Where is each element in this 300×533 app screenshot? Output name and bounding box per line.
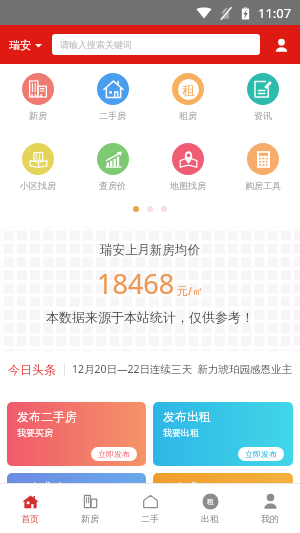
button[interactable]: 二手 — [120, 493, 180, 524]
staticText: 18468 — [97, 265, 175, 302]
button[interactable]: 小区找房 — [0, 143, 75, 191]
staticText: 立即发布 — [245, 516, 277, 526]
button[interactable]: 今日头条 — [8, 351, 292, 387]
button[interactable]: 立即发布 — [91, 447, 137, 461]
staticText: 新房 — [81, 513, 99, 524]
staticText: 出租 — [201, 513, 219, 524]
button[interactable]: 二手房 — [75, 73, 150, 121]
staticText: 瑞安 — [9, 38, 31, 52]
staticText: 二手房 — [99, 110, 126, 121]
button[interactable]: 查房价 — [75, 143, 150, 191]
button[interactable]: 发布二手房 — [7, 402, 146, 466]
staticText: 购房工具 — [245, 180, 281, 191]
staticText: 租房 — [179, 110, 197, 121]
button[interactable]: 发布出租 — [153, 402, 293, 466]
button[interactable]: 购房工具 — [225, 143, 300, 191]
staticText: 11:07 — [258, 4, 292, 22]
button[interactable]: 立即发布 — [238, 447, 284, 461]
staticText: 我的 — [261, 513, 279, 524]
staticText: 查房价 — [99, 180, 126, 191]
staticText: 发布求租 — [163, 480, 211, 495]
button[interactable]: 新房 — [60, 493, 120, 524]
staticText: 请输入搜索关键词 — [60, 39, 132, 50]
staticText: 立即发布 — [245, 449, 277, 459]
staticText: 首页 — [21, 513, 39, 524]
staticText: 新房 — [29, 110, 47, 121]
button[interactable]: 发布求租 — [153, 473, 293, 533]
staticText: 二手 — [141, 513, 159, 524]
staticText: 发布求购 — [17, 480, 65, 495]
staticText: 地图找房 — [170, 180, 206, 191]
staticText: 发布二手房 — [17, 409, 77, 424]
staticText: 瑞安上月新房均价 — [100, 242, 200, 258]
staticText: 租 — [207, 497, 214, 506]
button[interactable]: 立即发布 — [238, 514, 284, 528]
button[interactable]: 我的 — [240, 493, 300, 524]
staticText: 12月20日—22日连续三天 新力琥珀园感恩业主信 — [72, 362, 292, 376]
button[interactable]: 个人中心 — [269, 33, 293, 57]
staticText: 立即发布 — [98, 516, 130, 526]
button[interactable]: 租 — [180, 493, 240, 524]
staticText: 我要求购 — [17, 498, 53, 509]
staticText: 今日头条 — [8, 362, 56, 377]
staticText: 小区找房 — [20, 180, 56, 191]
staticText: 元/㎡ — [177, 283, 204, 298]
staticText: 立即发布 — [98, 449, 130, 459]
button[interactable]: 首页 — [0, 493, 60, 524]
staticText: 租 — [182, 82, 195, 98]
button[interactable]: 立即发布 — [91, 514, 137, 528]
button[interactable]: 新房 — [0, 73, 75, 121]
staticText: 我要出租 — [163, 427, 199, 438]
button[interactable]: 发布求购 — [7, 473, 146, 533]
button[interactable]: 瑞安 — [7, 34, 44, 56]
staticText: 我要买房 — [17, 427, 53, 438]
staticText: 发布出租 — [163, 409, 211, 424]
button[interactable]: 资讯 — [225, 73, 300, 121]
button[interactable]: 地图找房 — [150, 143, 225, 191]
staticText: 资讯 — [254, 110, 272, 121]
button[interactable]: 请输入搜索关键词 — [52, 34, 260, 55]
staticText: 本数据来源于本站统计，仅供参考！ — [46, 309, 254, 325]
button[interactable]: 租 — [150, 73, 225, 121]
